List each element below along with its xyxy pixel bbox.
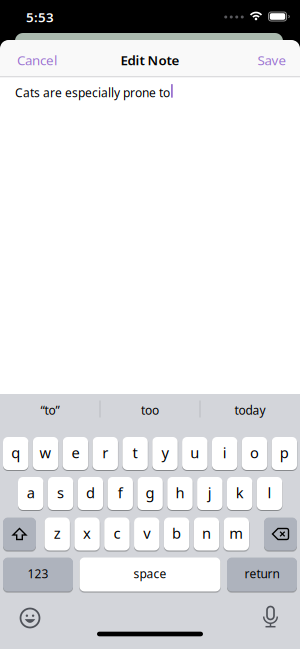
button[interactable]: m <box>224 517 249 550</box>
staticText: Cats are especially prone to <box>15 84 170 100</box>
staticText: Cancel <box>17 51 57 69</box>
staticText: k <box>236 483 244 502</box>
staticText: n <box>202 523 211 543</box>
button[interactable]: z <box>44 517 70 550</box>
button[interactable]: k <box>227 477 252 510</box>
button[interactable]: t <box>122 437 148 470</box>
staticText: e <box>71 443 79 462</box>
button[interactable]: too <box>105 395 195 425</box>
staticText: p <box>280 443 289 462</box>
button[interactable]: g <box>137 477 163 510</box>
staticText: Save <box>257 51 286 69</box>
staticText: “to” <box>40 402 59 418</box>
staticText: o <box>250 443 259 462</box>
staticText: q <box>11 443 20 462</box>
button[interactable]: Emoji <box>15 603 45 633</box>
button[interactable]: d <box>78 477 103 510</box>
button[interactable]: Shift <box>3 517 36 550</box>
staticText: m <box>229 523 243 543</box>
staticText: x <box>83 523 91 543</box>
staticText: 123 <box>27 565 48 581</box>
staticText: j <box>208 483 212 502</box>
button[interactable]: return <box>227 557 297 591</box>
button[interactable]: Delete <box>264 517 297 550</box>
button[interactable]: x <box>74 517 100 550</box>
button[interactable]: y <box>152 437 178 470</box>
staticText: i <box>223 443 227 462</box>
button[interactable]: e <box>63 437 88 470</box>
staticText: l <box>267 483 271 502</box>
staticText: c <box>113 523 120 543</box>
button[interactable]: “to” <box>5 395 95 425</box>
staticText: too <box>141 402 159 418</box>
staticText: return <box>244 565 279 581</box>
button[interactable]: i <box>212 437 237 470</box>
staticText: r <box>102 443 108 462</box>
staticText: space <box>133 565 166 581</box>
staticText: b <box>172 523 181 543</box>
button[interactable]: o <box>242 437 267 470</box>
staticText: 5:53 <box>26 8 54 26</box>
button[interactable]: p <box>272 437 297 470</box>
button[interactable]: Cancel <box>17 51 57 69</box>
button[interactable]: today <box>205 395 295 425</box>
staticText: t <box>133 443 138 462</box>
button[interactable]: q <box>3 437 28 470</box>
staticText: v <box>143 523 150 543</box>
staticText: Edit Note <box>120 51 179 69</box>
button[interactable]: space <box>79 557 220 591</box>
staticText: y <box>161 443 168 462</box>
staticText: g <box>146 483 155 502</box>
button[interactable]: n <box>194 517 219 550</box>
button[interactable]: w <box>33 437 58 470</box>
button[interactable]: c <box>104 517 130 550</box>
button[interactable]: s <box>48 477 73 510</box>
button[interactable]: v <box>134 517 159 550</box>
button[interactable]: h <box>167 477 193 510</box>
staticText: w <box>39 443 51 462</box>
staticText: d <box>86 483 95 502</box>
staticText: f <box>118 483 123 502</box>
staticText: a <box>27 483 35 502</box>
staticText: today <box>234 402 265 418</box>
button[interactable]: j <box>197 477 222 510</box>
button[interactable]: 123 <box>3 557 73 591</box>
staticText: z <box>54 523 61 543</box>
staticText: s <box>57 483 64 502</box>
button[interactable]: r <box>93 437 118 470</box>
button[interactable]: Save <box>257 51 286 69</box>
button[interactable]: f <box>108 477 133 510</box>
button[interactable]: l <box>257 477 282 510</box>
staticText: u <box>190 443 199 462</box>
button[interactable]: u <box>182 437 207 470</box>
button[interactable]: Dictation <box>255 602 285 632</box>
staticText: h <box>175 483 184 502</box>
button[interactable]: b <box>164 517 189 550</box>
button[interactable]: a <box>18 477 43 510</box>
